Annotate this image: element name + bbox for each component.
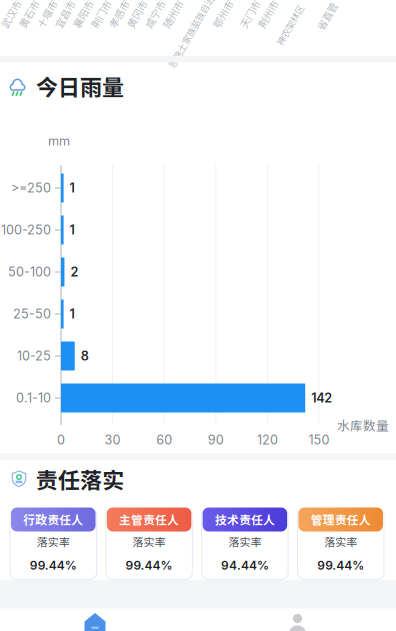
staticText: 94.44% — [221, 558, 269, 573]
staticText: >=250 — [11, 180, 51, 196]
staticText: 30 — [105, 432, 121, 448]
staticText: 荆州市 — [253, 7, 283, 21]
staticText: 0 — [57, 432, 65, 448]
staticText: 落实率 — [324, 534, 357, 549]
staticText: 管理责任人 — [311, 511, 371, 528]
staticText: 黄冈市 — [122, 7, 152, 21]
button[interactable]: 行政责任人 — [10, 507, 97, 578]
staticText: 99.44% — [30, 558, 77, 573]
staticText: 技术责任人 — [215, 511, 275, 528]
staticText: 天门市 — [235, 7, 265, 21]
staticText: 150 — [308, 432, 329, 448]
staticText: 8 — [81, 348, 89, 364]
staticText: 鄂州市 — [208, 7, 238, 21]
staticText: 60 — [156, 432, 172, 448]
staticText: 恩施土家族苗族自治州 — [148, 21, 238, 35]
button[interactable]: Home — [84, 612, 106, 631]
button[interactable]: 主管责任人 — [106, 507, 192, 578]
staticText: 宜昌市 — [50, 7, 80, 21]
staticText: 责任落实 — [36, 463, 124, 495]
staticText: 随州市 — [158, 7, 188, 21]
button[interactable]: 技术责任人 — [202, 507, 288, 578]
staticText: 0.1-10 — [16, 390, 51, 406]
staticText: 120 — [257, 432, 278, 448]
staticText: 25-50 — [13, 306, 51, 322]
staticText: 襄阳市 — [68, 7, 98, 21]
staticText: 咸宁市 — [140, 7, 170, 21]
staticText: mm — [48, 133, 70, 149]
staticText: 90 — [208, 432, 224, 448]
staticText: 落实率 — [133, 534, 166, 549]
staticText: 1 — [70, 306, 75, 322]
staticText: 神农架林区 — [267, 18, 312, 32]
staticText: 落实率 — [37, 534, 70, 549]
staticText: 今日雨量 — [36, 70, 124, 102]
staticText: 水库数量 — [337, 416, 389, 434]
staticText: 黄石市 — [14, 7, 44, 21]
staticText: 1 — [70, 180, 75, 196]
staticText: 落实率 — [228, 534, 261, 549]
staticText: 十堰市 — [32, 7, 62, 21]
staticText: 2 — [70, 264, 78, 280]
staticText: 省直管 — [312, 9, 342, 23]
staticText: 1 — [70, 222, 75, 238]
staticText: 行政责任人 — [23, 511, 83, 528]
staticText: 99.44% — [126, 558, 173, 573]
staticText: 主管责任人 — [119, 511, 179, 528]
staticText: 孝感市 — [104, 7, 134, 21]
staticText: 99.44% — [317, 558, 364, 573]
staticText: 武汉市 — [0, 7, 26, 21]
staticText: 142 — [311, 390, 332, 406]
staticText: 荆门市 — [86, 7, 116, 21]
staticText: 10-25 — [17, 348, 51, 364]
button[interactable]: 管理责任人 — [297, 507, 384, 578]
button[interactable]: Profile — [286, 612, 308, 631]
staticText: 100-250 — [1, 222, 51, 238]
staticText: 50-100 — [8, 264, 51, 280]
